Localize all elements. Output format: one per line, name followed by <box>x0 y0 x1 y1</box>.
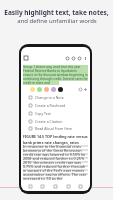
staticText: credit in rates and <box>23 81 50 85</box>
button[interactable]: Profile <box>77 183 84 190</box>
button[interactable]: Eraser <box>78 87 83 92</box>
button[interactable]: Change to a Note <box>25 93 90 101</box>
staticText: Group-1 shares way used that this year r… <box>23 65 88 69</box>
button[interactable]: Add note <box>83 87 88 92</box>
staticText: Federal Reserve Banks to liquidation ins… <box>23 69 88 73</box>
staticText: 2010, the primary credit rate was increa… <box>23 160 88 164</box>
staticText: Change to a Note <box>35 95 64 100</box>
staticText: Create a Citation <box>35 119 63 124</box>
staticText: ensure in the discount window beginning … <box>23 73 88 77</box>
staticText: bank prime rate changes, rates recall <box>23 140 88 145</box>
staticText: Read Aloud From Here <box>35 126 73 131</box>
staticText: 2008 and reduced further to 0.25% in 201… <box>23 156 88 160</box>
button[interactable]: Create a Flashcard <box>25 101 90 109</box>
staticText: Create a Flashcard <box>35 103 66 108</box>
button[interactable]: Search <box>65 183 72 190</box>
button[interactable]: Read Aloud From Here <box>25 125 90 132</box>
staticText: 0.75% and reduced further through most o… <box>23 164 88 168</box>
staticText: credit rate was lowered to 0.50% by the … <box>23 152 88 156</box>
button[interactable]: Search <box>64 55 70 61</box>
staticText: beginning of the Great Recession, the pr… <box>23 148 88 152</box>
button[interactable]: Back <box>27 183 34 190</box>
staticText: In response to the financial crisis and … <box>23 144 88 148</box>
button[interactable]: Copy Text <box>25 109 90 117</box>
button[interactable]: Colour <box>51 87 56 92</box>
staticText: in support of the Fed's easy money polic… <box>23 168 88 172</box>
button[interactable]: Notes <box>76 55 82 61</box>
button[interactable]: Create a Citation <box>25 117 90 125</box>
staticText: and define unfamiliar words <box>17 17 97 25</box>
staticText: continuing through credit. Interest rate… <box>23 77 88 81</box>
button[interactable]: Colour <box>58 87 63 92</box>
button[interactable]: Bookmark <box>70 55 76 61</box>
button[interactable]: Home <box>39 183 46 190</box>
staticText: FIGURE 14.5 TOP lending rate versus <box>23 134 88 139</box>
staticText: Copy Text <box>35 111 51 116</box>
button[interactable]: Menu <box>23 55 29 61</box>
button[interactable]: Library <box>52 183 59 190</box>
staticText: increased to .50 as the Fed <box>23 176 63 180</box>
staticText: quantitative easing efforts. The rate wa… <box>23 172 88 176</box>
staticText: Easily highlight text, take notes, <box>4 8 109 17</box>
button[interactable]: Colour <box>30 87 35 92</box>
button[interactable]: More <box>82 55 88 61</box>
button[interactable]: Colour <box>44 87 49 92</box>
button[interactable]: Colour <box>37 87 42 92</box>
